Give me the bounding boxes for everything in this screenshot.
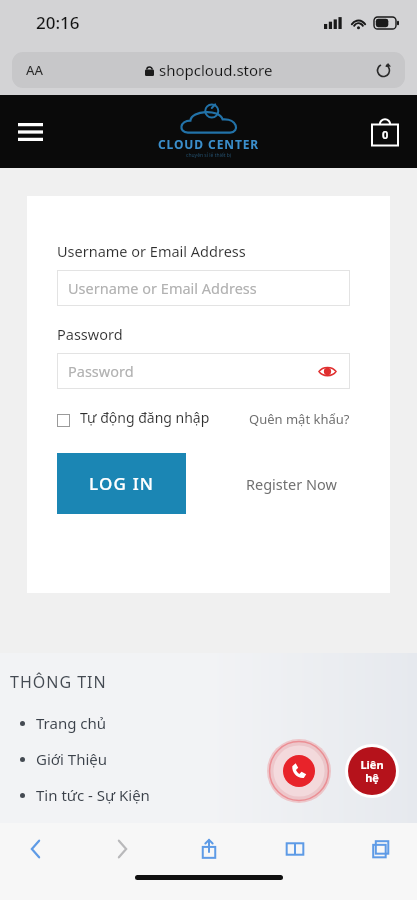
staticText: Giới Thiệu — [36, 749, 108, 769]
button[interactable]: Call — [267, 739, 331, 803]
staticText: Tự động đăng nhập — [80, 408, 210, 427]
button[interactable]: Share — [187, 827, 231, 871]
button[interactable]: Password — [57, 353, 350, 389]
button[interactable]: Forward — [100, 827, 144, 871]
staticText: Username or Email Address — [68, 278, 257, 298]
staticText: Password — [68, 361, 134, 381]
button[interactable]: CLOUD CENTER — [158, 105, 260, 159]
button[interactable]: LOG IN — [57, 453, 186, 514]
button[interactable]: Back — [14, 827, 58, 871]
staticText: chuyên sỉ lẻ thiết bị — [186, 152, 232, 159]
button[interactable]: Cart — [365, 112, 405, 152]
staticText: Trang chủ — [36, 713, 107, 733]
button[interactable]: Bookmarks — [273, 827, 317, 871]
staticText: Tin tức - Sự Kiện — [36, 785, 150, 805]
staticText: THÔNG TIN — [10, 671, 107, 693]
staticText: LOG IN — [89, 472, 155, 495]
staticText: shopcloud.store — [159, 60, 273, 80]
button[interactable]: Tabs — [359, 827, 403, 871]
button[interactable]: Show password — [316, 360, 338, 382]
button[interactable]: Tự động đăng nhập — [57, 408, 241, 427]
button[interactable]: Giới Thiệu — [20, 749, 108, 769]
button[interactable]: Trang chủ — [20, 713, 107, 733]
button[interactable]: Liên hệ — [348, 747, 396, 795]
button[interactable]: Menu — [8, 110, 52, 154]
button[interactable]: AA — [12, 52, 405, 88]
staticText: Password — [57, 324, 123, 344]
staticText: 20:16 — [36, 11, 80, 34]
button[interactable]: Username or Email Address — [57, 270, 350, 306]
staticText: CLOUD CENTER — [158, 136, 260, 152]
staticText: 0 — [382, 127, 389, 142]
button[interactable]: Tin tức - Sự Kiện — [20, 785, 150, 805]
button[interactable]: Quên mật khẩu? — [249, 410, 350, 428]
staticText: AA — [26, 61, 44, 79]
staticText: Liên hệ — [360, 757, 384, 785]
button[interactable]: Register Now — [246, 474, 337, 494]
staticText: Username or Email Address — [57, 241, 246, 261]
